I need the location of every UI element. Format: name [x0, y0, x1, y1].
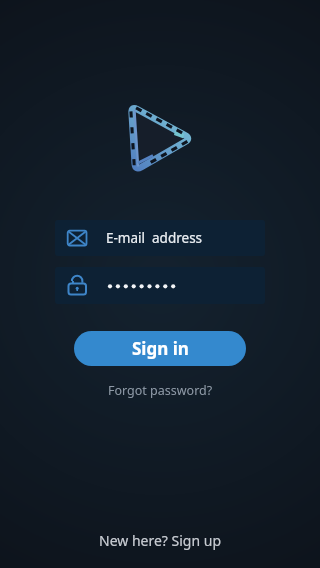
staticText: Forgot password? — [108, 382, 213, 399]
button[interactable]: Forgot password? — [108, 382, 213, 399]
button[interactable]: E-mail address — [55, 220, 265, 256]
staticText: E-mail address — [106, 229, 203, 247]
button[interactable]: Sign in — [74, 331, 246, 366]
button[interactable]: New here? Sign up — [99, 531, 222, 550]
staticText: Sign in — [132, 337, 189, 360]
button[interactable] — [55, 267, 265, 304]
staticText: New here? Sign up — [99, 531, 222, 550]
